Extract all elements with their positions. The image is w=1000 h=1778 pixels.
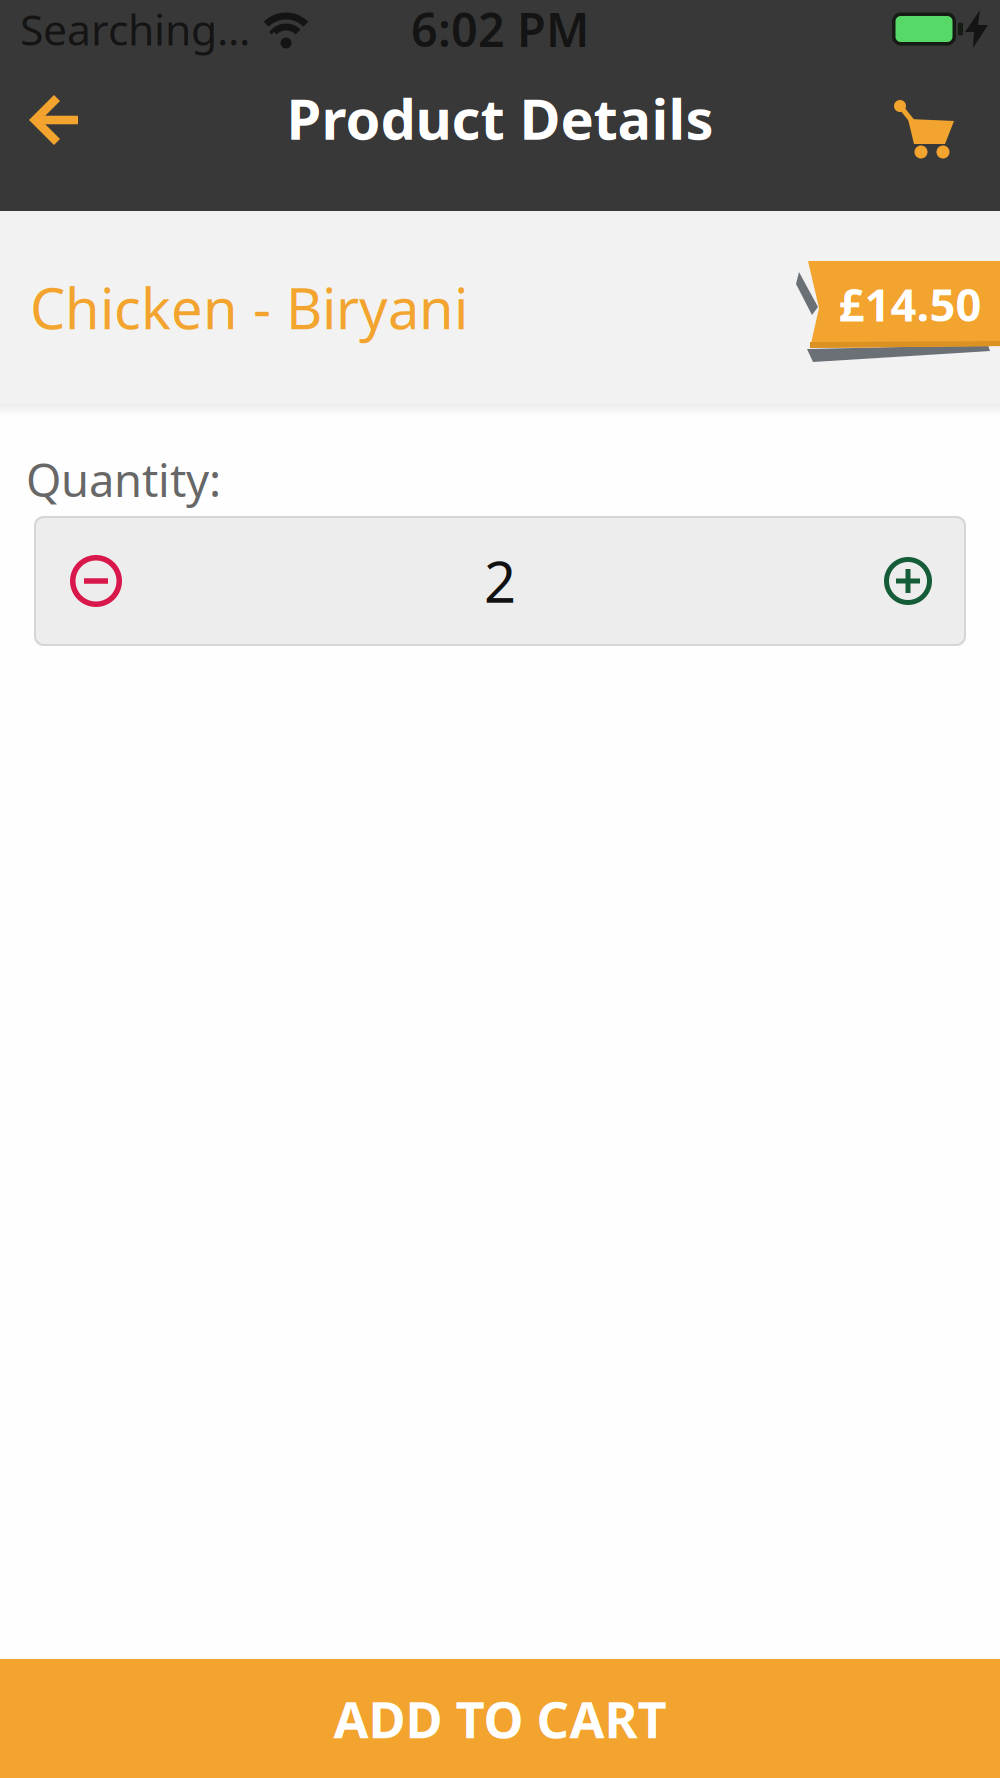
button[interactable]: Back — [0, 92, 80, 144]
staticText: Searching... — [20, 1, 250, 57]
staticText: 2 — [484, 544, 516, 618]
staticText: £14.50 — [838, 274, 981, 334]
staticText: 6:02 PM — [411, 0, 589, 60]
button[interactable]: Cart — [892, 86, 1000, 150]
button[interactable]: ADD TO CART — [0, 1659, 1000, 1778]
staticText: Product Details — [286, 81, 713, 155]
button[interactable]: Decrease quantity — [34, 555, 122, 607]
staticText: Chicken - Biryani — [30, 270, 468, 345]
staticText: ADD TO CART — [333, 1685, 666, 1752]
staticText: Quantity: — [26, 449, 221, 510]
button[interactable]: Increase quantity — [884, 557, 966, 605]
